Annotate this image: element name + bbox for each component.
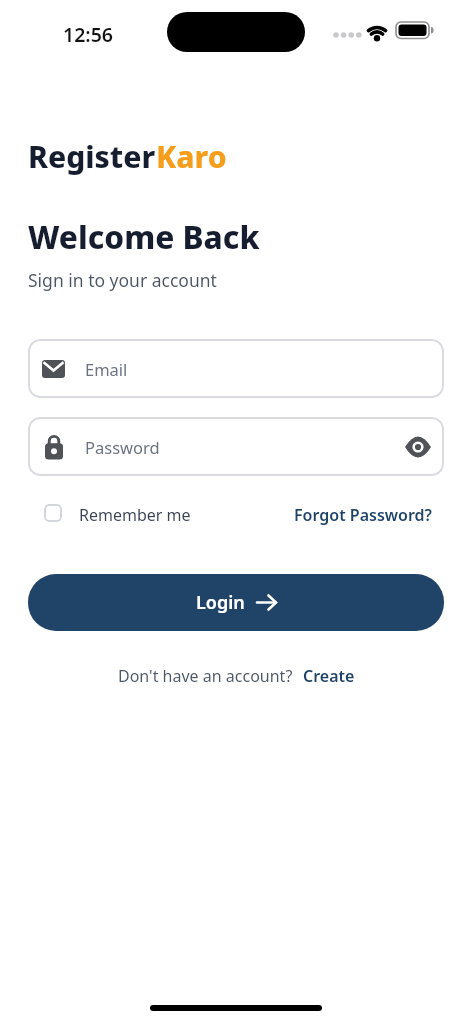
staticText: Welcome Back	[28, 215, 260, 258]
button[interactable]: Create	[303, 665, 355, 687]
staticText: Sign in to your account	[28, 268, 217, 292]
button[interactable]	[44, 504, 62, 522]
staticText: Remember me	[79, 504, 191, 526]
button[interactable]: Forgot Password?	[294, 504, 432, 526]
button[interactable]: Login	[28, 574, 444, 631]
staticText: Register	[28, 136, 156, 177]
button[interactable]: Email	[28, 339, 444, 398]
staticText: Password	[85, 436, 160, 458]
button[interactable]	[394, 423, 442, 471]
staticText: Don't have an account?	[118, 665, 293, 687]
staticText: 12:56	[63, 21, 113, 48]
staticText: Karo	[156, 136, 227, 177]
button[interactable]: Password	[28, 417, 444, 476]
staticText: Email	[85, 358, 128, 380]
staticText: Login	[196, 590, 245, 615]
